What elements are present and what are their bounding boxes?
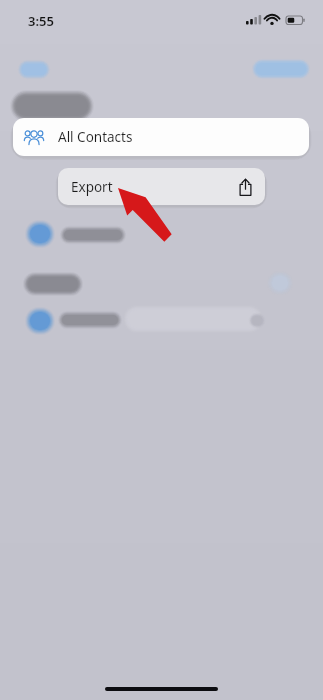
staticText: 3:55 <box>28 12 54 30</box>
other: Share <box>238 178 253 196</box>
staticText: All Contacts <box>58 128 133 146</box>
button[interactable]: All Contacts <box>13 118 309 156</box>
staticText: Export <box>71 178 113 196</box>
button[interactable]: Export <box>58 168 265 205</box>
